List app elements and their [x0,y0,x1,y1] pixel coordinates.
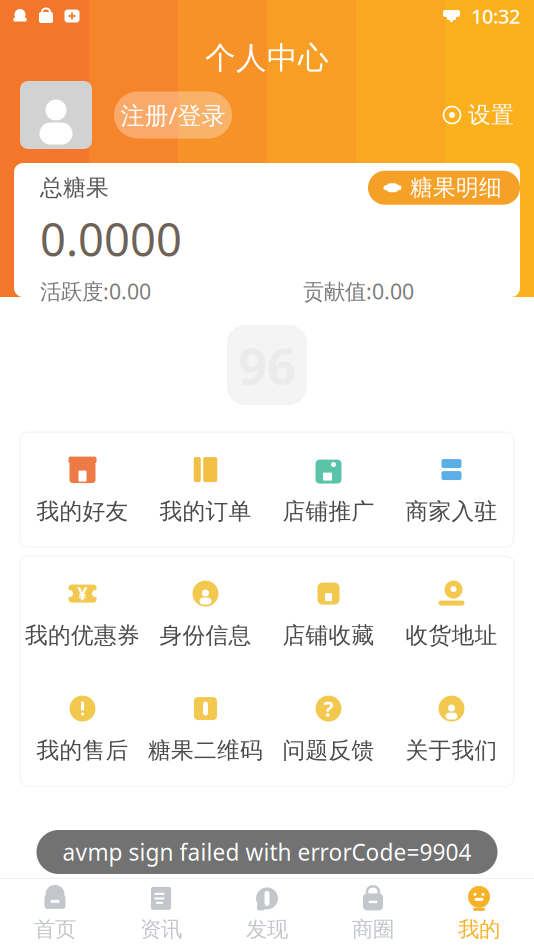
button[interactable]: 店铺推广 [267,432,390,547]
button[interactable]: 我的订单 [144,432,267,547]
staticText: 糖果二维码 [148,737,263,764]
staticText: 商圈 [352,916,394,943]
staticText: 我的优惠券 [25,622,140,649]
button[interactable]: 资讯 [108,879,214,949]
staticText: 注册/登录 [120,99,225,131]
staticText: avmp sign failed with errorCode=9904 [62,837,471,867]
staticText: 收货地址 [405,622,497,649]
staticText: 我的 [458,916,500,943]
button[interactable]: 商家入驻 [390,432,513,547]
button[interactable]: 店铺收藏 [267,556,390,671]
staticText: 我的售后 [36,737,128,764]
staticText: 关于我们 [405,737,497,764]
button[interactable]: 关于我们 [390,671,513,786]
staticText: 问题反馈 [282,737,374,764]
staticText: 活跃度:0.00 [40,277,151,305]
staticText: 个人中心 [205,39,329,77]
staticText: 贡献值:0.00 [303,277,414,305]
staticText: 发现 [246,916,288,943]
staticText: 我的订单 [159,498,251,525]
staticText: 首页 [34,916,76,943]
button[interactable]: 注册/登录 [114,91,232,138]
button[interactable]: 糖果二维码 [144,671,267,786]
button[interactable]: 收货地址 [390,556,513,671]
button[interactable]: 糖果明细 [368,171,520,205]
staticText: 店铺推广 [282,498,374,525]
staticText: 96 [238,331,296,399]
button[interactable]: 我的售后 [21,671,144,786]
staticText: 店铺收藏 [282,622,374,649]
button[interactable]: 发现 [214,879,320,949]
staticText: ¥ [77,582,87,605]
button[interactable]: 我的好友 [21,432,144,547]
button[interactable]: 我的 [426,879,532,949]
staticText: 资讯 [140,916,182,943]
button[interactable]: 设置 [437,93,520,137]
staticText: 我的好友 [36,498,128,525]
button[interactable]: ? [267,671,390,786]
staticText: ? [323,694,333,723]
staticText: 商家入驻 [405,498,497,525]
button[interactable]: ¥ [21,556,144,671]
staticText: 糖果明细 [410,174,502,202]
staticText: 身份信息 [159,622,251,649]
button[interactable]: Avatar [20,81,92,149]
staticText: 设置 [468,101,514,129]
staticText: 0.0000 [40,209,182,269]
button[interactable]: 身份信息 [144,556,267,671]
button[interactable]: 商圈 [320,879,426,949]
staticText: 总糖果 [40,174,109,202]
button[interactable]: 首页 [2,879,108,949]
staticText: 10:32 [471,3,520,29]
